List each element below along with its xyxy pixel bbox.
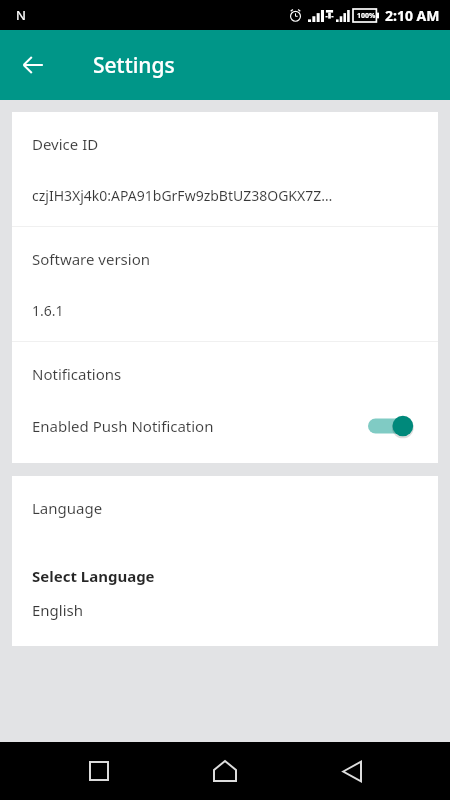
button[interactable]: Back (11, 43, 55, 87)
staticText: Select Language (32, 566, 155, 586)
button[interactable]: Device ID (12, 112, 438, 226)
staticText: 100% (357, 11, 376, 21)
staticText: 2:10 AM (385, 6, 440, 25)
staticText: Language (32, 498, 103, 518)
button[interactable]: Select Language (12, 566, 438, 620)
button[interactable]: Home (197, 743, 253, 799)
staticText: Enabled Push Notification (32, 416, 214, 436)
staticText: N (16, 6, 26, 24)
staticText: 1.6.1 (32, 301, 64, 320)
staticText: Device ID (32, 134, 99, 154)
staticText: czjIH3Xj4k0:APA91bGrFw9zbBtUZ38OGKX7Z… (32, 186, 333, 205)
staticText: Notifications (32, 364, 122, 384)
button[interactable]: Software version (12, 227, 438, 341)
staticText: English (32, 600, 84, 620)
button[interactable]: Back (324, 743, 380, 799)
staticText: Settings (93, 51, 175, 80)
button[interactable]: Enabled Push Notification (12, 411, 438, 441)
button[interactable]: Recent apps (71, 743, 127, 799)
staticText: Software version (32, 249, 151, 269)
